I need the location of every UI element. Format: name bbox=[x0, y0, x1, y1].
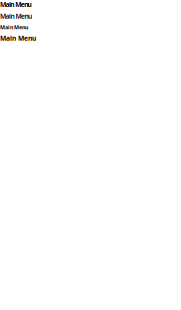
staticText: Main Menu bbox=[0, 12, 32, 21]
staticText: Main Menu bbox=[0, 24, 28, 31]
staticText: Main Menu bbox=[0, 0, 32, 9]
staticText: Main Menu bbox=[0, 34, 36, 43]
